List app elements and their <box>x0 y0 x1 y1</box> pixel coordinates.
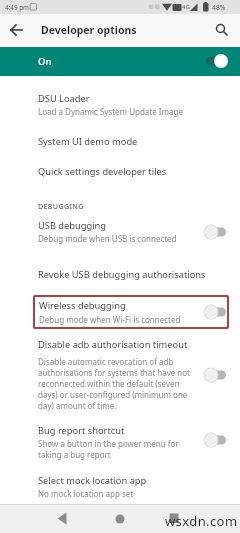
staticText: 4:49 pm <box>5 3 29 12</box>
button[interactable] <box>0 158 240 186</box>
button[interactable] <box>8 21 26 39</box>
staticText: Debug mode when Wi-Fi is connected <box>39 314 181 325</box>
staticText: Debug mode when USB is connected <box>38 233 177 244</box>
button[interactable] <box>0 128 240 156</box>
staticText: Load a Dynamic System Update Image <box>38 106 183 117</box>
staticText: Wireless debugging <box>39 299 126 312</box>
button[interactable] <box>0 292 240 332</box>
button[interactable] <box>0 47 240 76</box>
staticText: wsxdn.com <box>165 512 238 529</box>
staticText: Quick settings developer tiles <box>38 165 167 178</box>
staticText: DEBUGGING <box>38 201 84 211</box>
button[interactable] <box>204 432 228 448</box>
button[interactable] <box>0 216 240 248</box>
staticText: USB debugging <box>38 219 107 232</box>
staticText: Disable adb authorisation timeout <box>38 338 188 351</box>
button[interactable] <box>213 21 231 39</box>
button[interactable] <box>0 261 240 289</box>
staticText: No mock location app set <box>38 488 134 499</box>
staticText: Bug report shortcut <box>38 424 125 437</box>
button[interactable] <box>0 336 240 410</box>
button[interactable] <box>204 367 228 383</box>
button[interactable] <box>204 224 228 240</box>
button[interactable] <box>54 510 72 528</box>
staticText: Developer options <box>41 23 137 37</box>
staticText: On <box>38 55 52 68</box>
button[interactable] <box>111 510 129 528</box>
button[interactable] <box>0 84 240 116</box>
staticText: Show a button in the power menu for taki… <box>38 438 179 460</box>
button[interactable] <box>204 53 228 69</box>
staticText: Disable automatic revocation of adb auth… <box>38 356 190 411</box>
staticText: 48% <box>212 3 226 12</box>
staticText: Select mock location app <box>38 474 147 487</box>
staticText: 4G <box>182 3 190 11</box>
button[interactable] <box>204 304 228 320</box>
staticText: System UI demo mode <box>38 135 138 148</box>
button[interactable] <box>0 470 240 502</box>
button[interactable] <box>0 420 240 462</box>
button[interactable] <box>165 510 183 528</box>
staticText: DSU Loader <box>38 92 90 105</box>
staticText: Revoke USB debugging authorisations <box>38 268 206 281</box>
